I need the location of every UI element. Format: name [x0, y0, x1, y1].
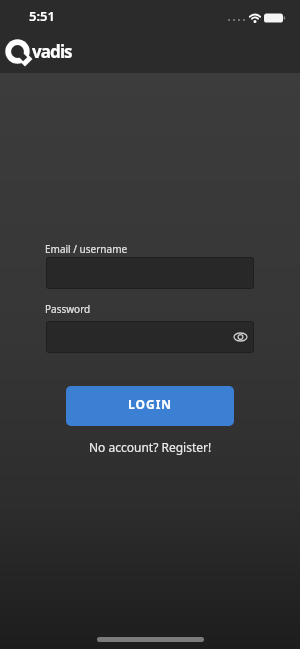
- staticText: vadis: [32, 40, 72, 63]
- staticText: Email / username: [45, 242, 128, 256]
- button[interactable]: [46, 321, 254, 353]
- staticText: LOGIN: [128, 396, 173, 412]
- button[interactable]: No account? Register!: [89, 439, 212, 455]
- staticText: Password: [45, 302, 91, 316]
- staticText: 5:51: [29, 7, 55, 25]
- button[interactable]: LOGIN: [66, 386, 234, 426]
